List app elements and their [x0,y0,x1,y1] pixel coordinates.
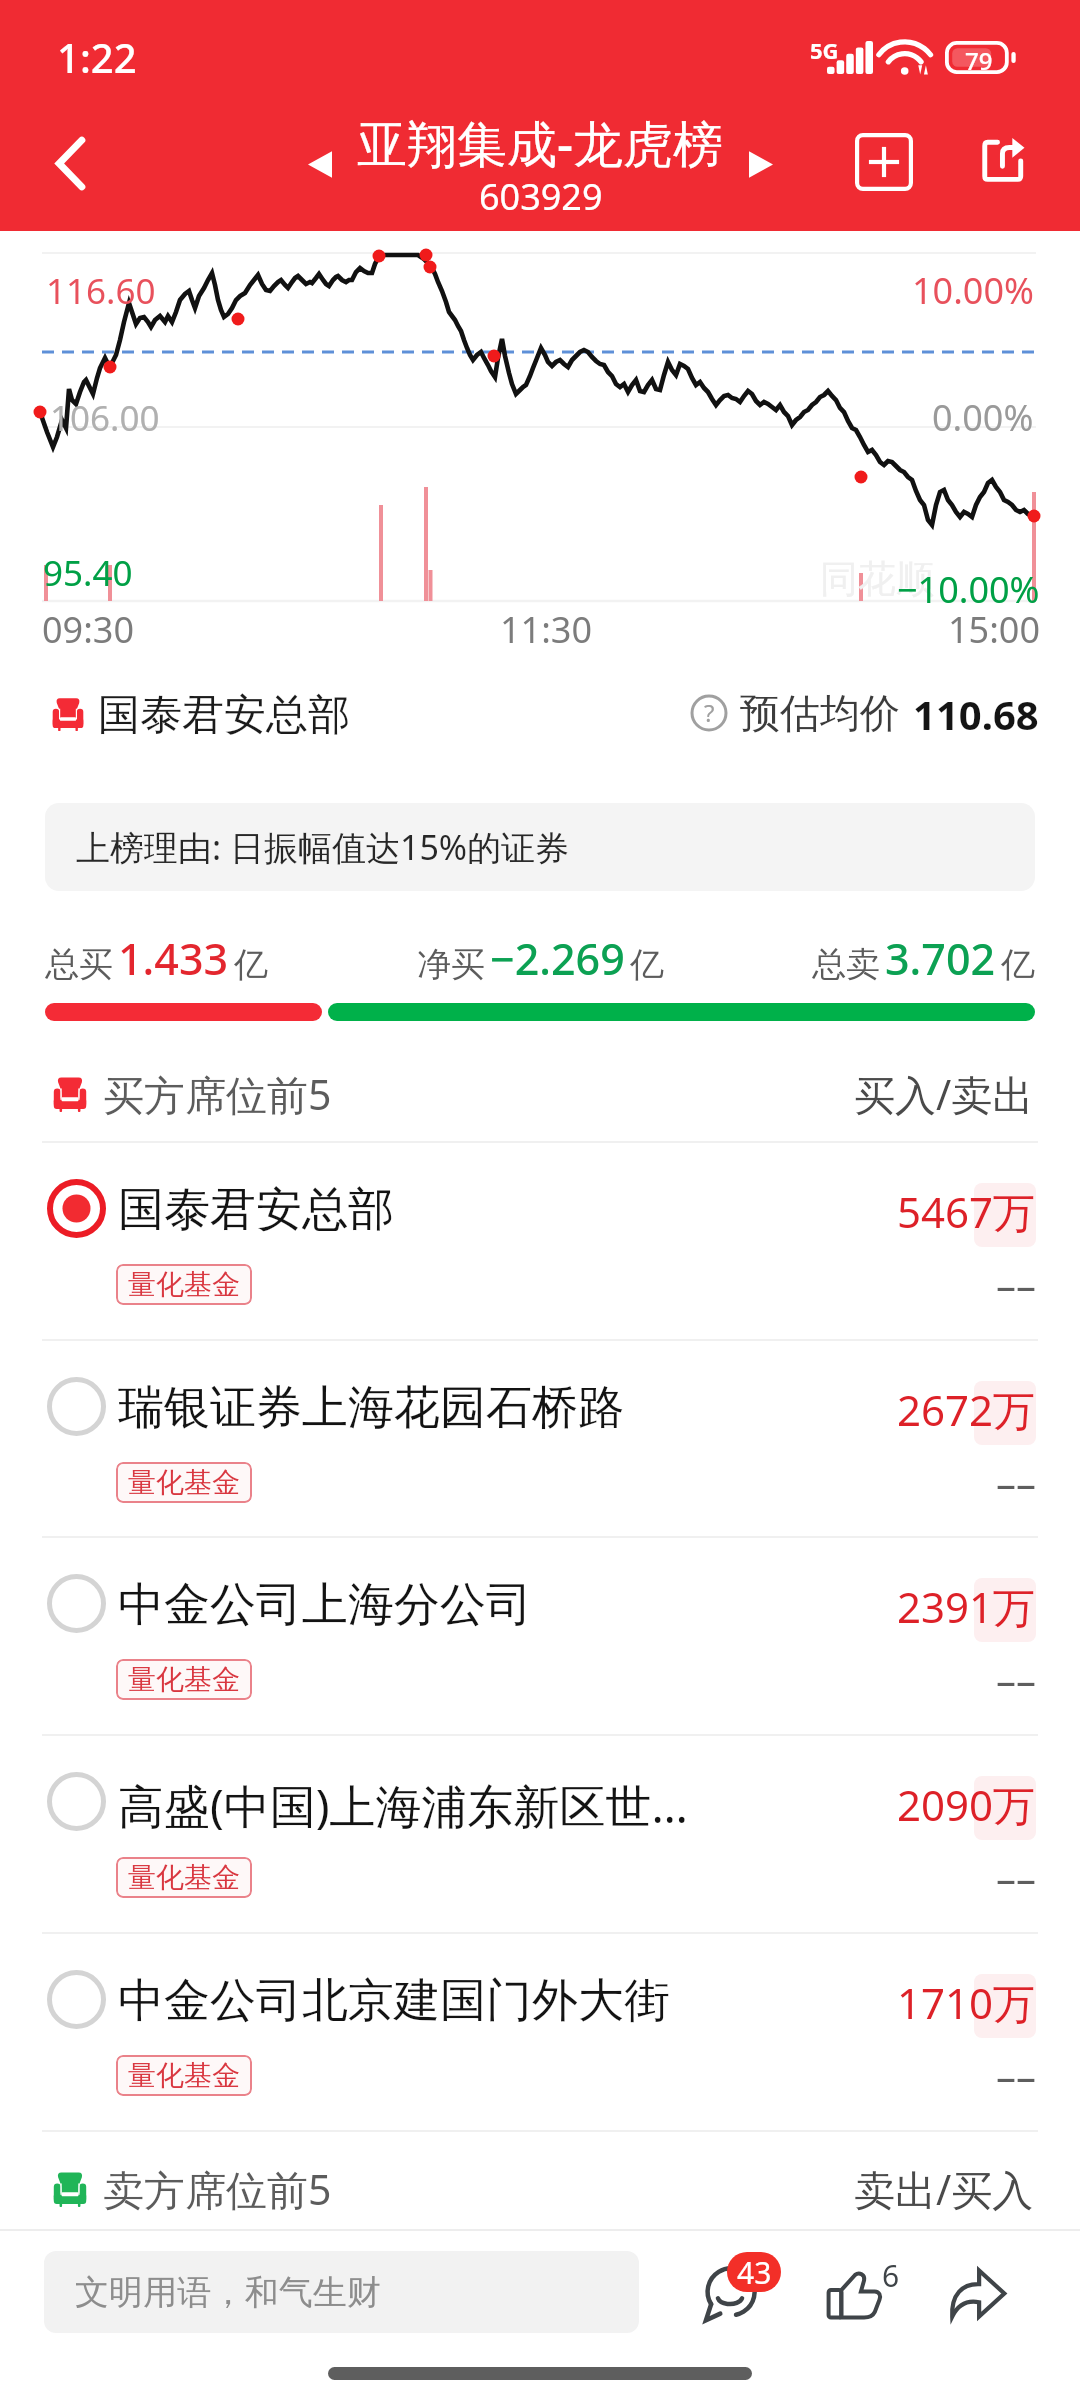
staticText: 79 [965,44,993,77]
staticText: 文明用语，和气生财 [75,2271,381,2314]
staticText: –– [996,2048,1036,2102]
staticText: 1.433 [118,929,229,988]
staticText: 亿 [234,943,268,986]
staticText: 高盛(中国)上海浦东新区世… [118,1774,688,1837]
button[interactable]: Next stock [719,118,803,208]
button[interactable]: 瑞银证券上海花园石桥路 [0,1339,1080,1536]
staticText: 总买 [45,943,113,986]
button[interactable]: Share [946,110,1056,220]
staticText: 106.00 [50,394,160,442]
staticText: 15:00 [948,605,1041,654]
staticText: 2672万 [897,1381,1036,1438]
staticText: 量化基金 [128,2058,240,2093]
staticText: 2090万 [897,1776,1036,1833]
staticText: 2391万 [897,1578,1036,1635]
staticText: 亚翔集成-龙虎榜 [357,109,724,177]
staticText: 09:30 [42,605,135,654]
staticText: 上榜理由: 日振幅值达15%的证券 [76,824,570,870]
staticText: 买方席位前5 [103,1066,332,1122]
staticText: 中金公司上海分公司 [118,1576,532,1634]
staticText: 国泰君安总部 [98,689,350,742]
staticText: ? [704,696,715,729]
button[interactable]: Comments [698,2258,782,2330]
button[interactable]: Back [22,110,132,220]
staticText: –– [996,1455,1036,1509]
staticText: –– [996,1652,1036,1706]
button[interactable]: 买方席位前5 [0,1060,1080,1126]
button[interactable]: Add to watchlist [828,110,938,220]
button[interactable]: 高盛(中国)上海浦东新区世… [0,1734,1080,1932]
staticText: –– [996,1850,1036,1904]
staticText: 量化基金 [128,1662,240,1697]
staticText: 3.702 [885,929,996,988]
button[interactable]: 中金公司上海分公司 [0,1536,1080,1734]
staticText: 110.68 [913,687,1039,741]
staticText: 43 [737,2252,772,2292]
staticText: 净买 [417,943,485,986]
button[interactable]: Previous stock [278,118,362,208]
staticText: 总卖 [812,943,880,986]
staticText: 95.40 [43,549,133,597]
staticText: 亿 [630,943,664,986]
button[interactable]: 文明用语，和气生财 [44,2251,639,2333]
staticText: 中金公司北京建国门外大街 [118,1972,670,2030]
button[interactable]: What is the estimated average price? [690,694,728,732]
staticText: 5G [810,35,839,65]
staticText: 116.60 [46,267,156,315]
staticText: 卖方席位前5 [103,2161,332,2217]
staticText: 瑞银证券上海花园石桥路 [118,1379,624,1437]
staticText: 同花顺 [820,555,934,603]
staticText: 603929 [479,172,603,221]
staticText: −10.00% [897,565,1040,614]
button[interactable]: 国泰君安总部 [0,680,1080,746]
staticText: 卖出/买入 [854,2161,1034,2217]
staticText: 亿 [1001,943,1035,986]
staticText: 量化基金 [128,1465,240,1500]
button[interactable]: 卖方席位前5 [0,2155,1080,2221]
button[interactable]: 中金公司北京建国门外大街 [0,1932,1080,2130]
staticText: 6 [882,2255,900,2296]
staticText: 0.00% [932,393,1034,442]
staticText: 5467万 [897,1183,1036,1240]
staticText: 量化基金 [128,1267,240,1302]
staticText: 1:22 [57,30,137,84]
staticText: 买入/卖出 [854,1066,1034,1122]
staticText: 量化基金 [128,1860,240,1895]
staticText: –– [996,1257,1036,1311]
staticText: 1710万 [897,1974,1036,2031]
button[interactable]: Like [820,2256,900,2328]
staticText: 10.00% [912,266,1034,315]
staticText: 11:30 [500,605,593,654]
button[interactable]: 国泰君安总部 [0,1141,1080,1339]
staticText: 国泰君安总部 [118,1181,394,1239]
staticText: −2.269 [490,929,625,988]
button[interactable]: 上榜理由: 日振幅值达15%的证券 [45,803,1035,891]
staticText: 预估均价 [740,688,900,738]
button[interactable]: Forward [940,2256,1020,2328]
